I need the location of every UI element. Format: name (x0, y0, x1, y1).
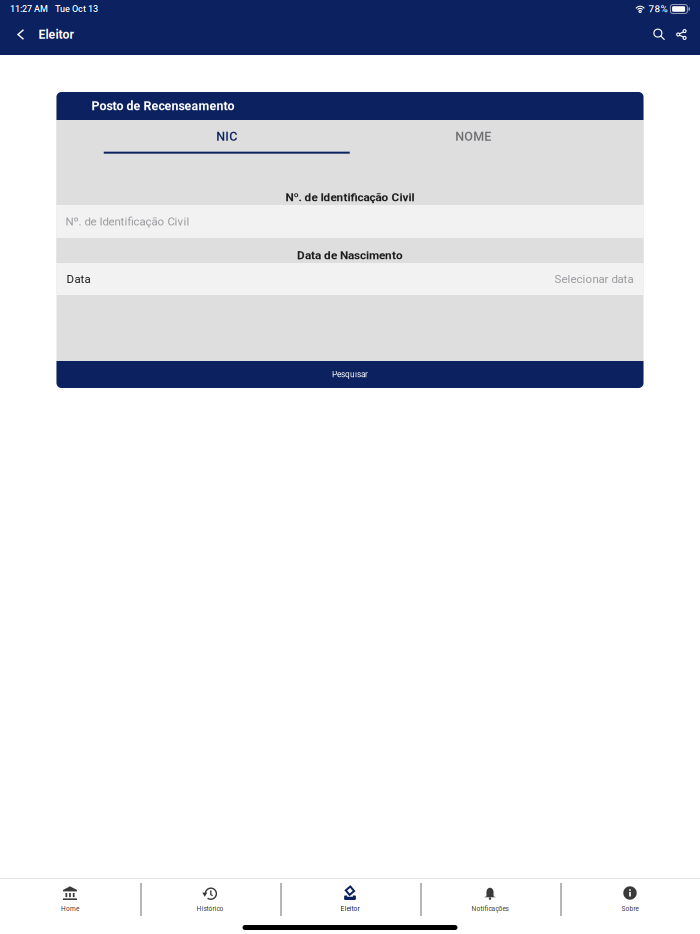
staticText: Pesquisar (332, 370, 368, 379)
staticText: 78% (648, 3, 667, 15)
button[interactable]: Pesquisar (56, 361, 643, 388)
button[interactable]: Search (639, 18, 669, 51)
staticText: Eleitor (38, 27, 73, 42)
staticText: Tue Oct 13 (55, 4, 98, 14)
button[interactable]: Back (0, 18, 38, 51)
staticText: Eleitor (340, 905, 359, 913)
button[interactable]: NOME (350, 120, 596, 179)
staticText: Posto de Recenseamento (91, 99, 234, 113)
button[interactable]: Home (0, 879, 140, 934)
staticText: Selecionar data (554, 272, 633, 286)
button[interactable]: Notificações (420, 879, 560, 934)
button[interactable]: Histórico (140, 879, 280, 934)
staticText: Notificações (471, 905, 508, 913)
staticText: Sobre (621, 905, 638, 913)
button[interactable]: Eleitor (280, 879, 420, 934)
button[interactable]: Share (669, 18, 700, 51)
staticText: Nº. de Identificação Civil (65, 215, 189, 228)
staticText: Data de Nascimento (297, 248, 403, 262)
staticText: NOME (455, 129, 491, 144)
staticText: NIC (216, 129, 237, 144)
staticText: Home (61, 905, 79, 913)
staticText: Data (66, 272, 90, 286)
button[interactable]: Sobre (560, 879, 700, 934)
staticText: Histórico (196, 905, 223, 913)
button[interactable]: NIC (103, 120, 350, 179)
staticText: Nº. de Identificação Civil (285, 190, 414, 204)
button[interactable]: Data (56, 263, 643, 295)
staticText: 11:27 AM (10, 4, 48, 14)
